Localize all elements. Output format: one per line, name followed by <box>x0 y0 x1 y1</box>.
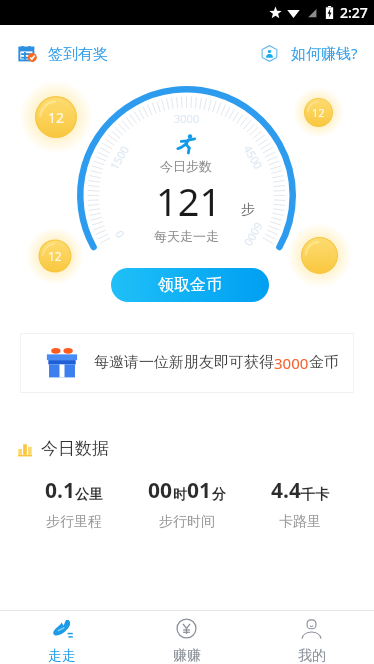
staticText: 今日步数 <box>160 158 212 174</box>
staticText: 步行时间 <box>159 513 215 531</box>
staticText: 签到有奖 <box>48 45 108 64</box>
button[interactable]: 赚赚 <box>124 611 249 664</box>
staticText: 时 <box>173 486 187 504</box>
button[interactable]: 签到有奖 <box>19 44 108 63</box>
staticText: 卡路里 <box>279 513 321 531</box>
staticText: 01 <box>187 476 212 505</box>
staticText: 00 <box>148 476 173 505</box>
staticText: 121 <box>156 175 222 227</box>
staticText: 0.1 <box>45 476 75 505</box>
staticText: 步 <box>241 201 255 219</box>
staticText: 12 <box>48 248 62 264</box>
button[interactable]: 走走 <box>0 611 124 664</box>
button[interactable]: 领取金币 <box>111 268 269 302</box>
button[interactable]: 每邀请一位新朋友即可获得 <box>20 333 354 393</box>
staticText: 3000 <box>274 353 309 373</box>
staticText: 每天走一走 <box>154 228 219 244</box>
staticText: 0 <box>111 227 127 241</box>
button[interactable]: 如何赚钱? <box>261 43 358 63</box>
staticText: 今日数据 <box>41 438 109 459</box>
staticText: 金币 <box>309 353 339 372</box>
button[interactable]: 我的 <box>249 611 374 664</box>
staticText: 走走 <box>48 647 76 664</box>
staticText: 4500 <box>241 142 267 172</box>
staticText: 如何赚钱? <box>291 43 358 63</box>
staticText: 步行里程 <box>46 513 102 531</box>
staticText: 每邀请一位新朋友即可获得 <box>94 353 274 372</box>
staticText: 3000 <box>174 111 200 126</box>
staticText: 赚赚 <box>173 647 201 664</box>
staticText: 公里 <box>75 486 103 504</box>
staticText: 我的 <box>298 647 326 664</box>
staticText: 4.4 <box>271 476 301 505</box>
staticText: 12 <box>48 108 65 127</box>
staticText: 2:27 <box>340 3 368 22</box>
staticText: 领取金币 <box>158 275 222 295</box>
staticText: 6000 <box>241 220 267 250</box>
staticText: 分 <box>212 486 226 504</box>
staticText: 1500 <box>106 142 132 172</box>
staticText: 12 <box>312 105 325 120</box>
staticText: 千卡 <box>301 486 329 504</box>
